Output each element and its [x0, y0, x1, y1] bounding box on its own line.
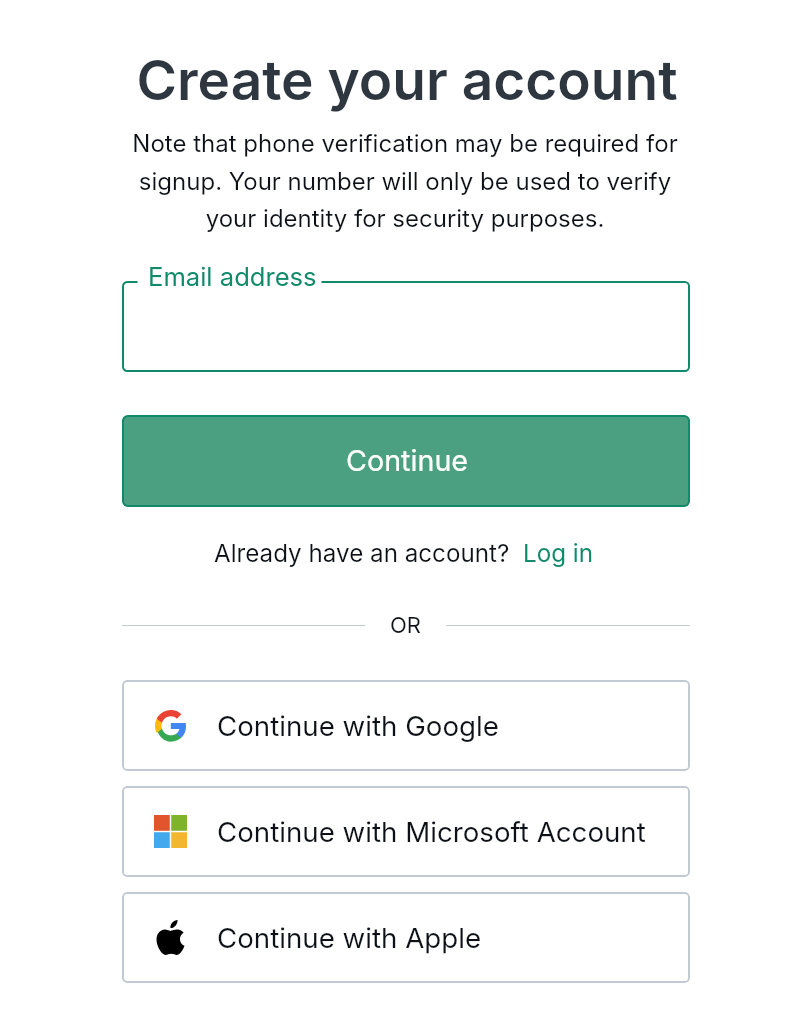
staticText: Create your account — [7, 47, 800, 114]
button[interactable]: Log in — [523, 539, 593, 568]
staticText: Continue with Apple — [217, 921, 482, 955]
staticText: Continue with Google — [217, 709, 499, 743]
staticText: Log in — [523, 539, 593, 568]
staticText: Continue — [346, 443, 469, 478]
button[interactable]: Continue — [122, 415, 690, 507]
staticText: Continue with Microsoft Account — [217, 815, 646, 849]
button[interactable]: Continue with Microsoft Account — [122, 786, 690, 877]
staticText: Already have an account? — [214, 539, 510, 568]
staticText: Email address — [148, 261, 317, 292]
button[interactable]: Continue with Google — [122, 680, 690, 771]
staticText: Note that phone verification may be requ… — [123, 129, 687, 233]
button[interactable]: Email address text field — [122, 281, 690, 372]
button[interactable]: Continue with Apple — [122, 892, 690, 983]
staticText: OR — [390, 612, 421, 639]
